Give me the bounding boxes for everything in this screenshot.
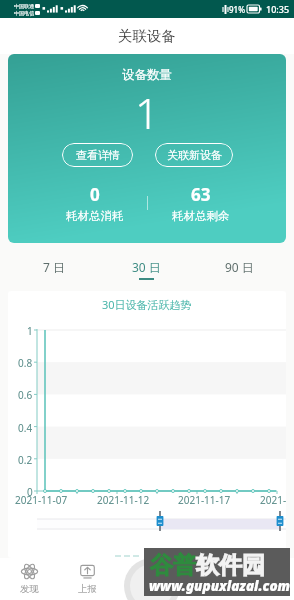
button[interactable]: 消息 [117, 558, 176, 600]
button[interactable]: 关联新设备 [155, 143, 233, 167]
staticText: 1 [135, 84, 159, 141]
staticText: 0 [27, 485, 33, 499]
staticText: 91% [229, 4, 245, 15]
staticText: 中国联通 [14, 3, 34, 9]
button[interactable]: 7 日 [8, 254, 100, 283]
staticText: 0 [90, 183, 100, 206]
staticText: 1 [27, 324, 33, 338]
staticText: 7 日 [43, 259, 65, 275]
staticText: 2021-11-17 [178, 493, 231, 507]
button[interactable]: 我的 [235, 558, 294, 600]
staticText: 63 [191, 183, 211, 206]
staticText: 关联设备 [118, 27, 176, 45]
staticText: 消息 [137, 583, 156, 595]
button[interactable]: 90 日 [193, 254, 286, 283]
staticText: 0.8 [18, 356, 33, 370]
button[interactable]: 发现 [0, 558, 58, 600]
staticText: 关联新设备 [167, 148, 222, 162]
staticText: 任务 [196, 583, 215, 595]
staticText: 2021-11-12 [97, 493, 150, 507]
staticText: 0.2 [18, 453, 33, 467]
button[interactable]: 查看详情 [62, 143, 133, 167]
button[interactable]: 任务 [176, 558, 235, 600]
staticText: 上报 [78, 583, 97, 595]
staticText: 10:35 [266, 3, 290, 15]
button[interactable]: 30 日 [100, 254, 193, 283]
staticText: 查看详情 [76, 148, 120, 162]
staticText: www.gupuxlazal.com [149, 577, 291, 595]
staticText: 2021-11- [260, 493, 286, 507]
staticText: 耗材总剩余 [172, 209, 230, 223]
staticText: 发现 [20, 583, 39, 595]
staticText: 中国电信 [14, 10, 34, 16]
staticText: 2021-11-07 [15, 493, 68, 507]
staticText: 90 日 [225, 259, 254, 275]
staticText: 设备数量 [122, 67, 172, 83]
staticText: 软件园 [196, 551, 265, 580]
staticText: 30日设备活跃趋势 [102, 297, 192, 312]
staticText: 耗材总消耗 [66, 209, 124, 223]
staticText: 30 日 [132, 259, 161, 275]
staticText: 我的 [255, 583, 274, 595]
staticText: 0.6 [18, 388, 33, 402]
button[interactable]: 上报 [58, 558, 117, 600]
staticText: 0.4 [18, 421, 33, 435]
staticText: 谷普 [150, 551, 196, 580]
